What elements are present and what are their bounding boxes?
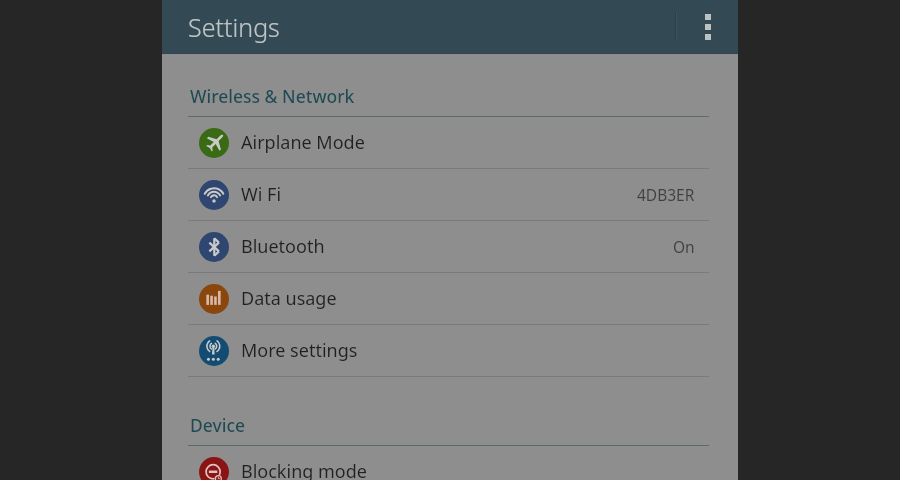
staticText: Wi Fi [241,182,282,207]
staticText: Bluetooth [241,234,325,259]
button[interactable]: Airplane Mode [162,117,738,168]
staticText: Wireless & Network [190,84,355,108]
staticText: Data usage [241,286,337,311]
button[interactable]: Blocking mode [162,446,738,480]
staticText: Settings [188,10,280,44]
button[interactable]: Bluetooth [162,221,738,272]
staticText: More settings [241,338,358,363]
staticText: Airplane Mode [241,130,365,155]
staticText: Device [190,413,246,437]
staticText: 4DB3ER [637,184,695,205]
button[interactable]: Wi Fi [162,169,738,220]
button[interactable]: More options [687,0,729,53]
staticText: Blocking mode [241,459,367,480]
staticText: On [673,236,695,257]
button[interactable]: Data usage [162,273,738,324]
button[interactable]: More settings [162,325,738,376]
